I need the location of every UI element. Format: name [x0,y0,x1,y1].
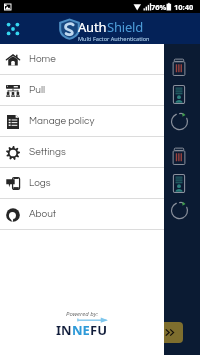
staticText: NE [72,321,90,335]
button[interactable]: Home [0,44,164,74]
button[interactable]: About [0,199,164,229]
button[interactable]: Details [172,85,186,104]
button[interactable]: Delete [172,58,186,77]
staticText: 76% [151,2,167,12]
button[interactable]: Pull [0,75,164,105]
staticText: FU [90,321,107,335]
staticText: Auth [78,18,107,36]
staticText: Logs [29,178,51,188]
staticText: Powered by: [66,310,98,318]
staticText: Pull [29,85,46,95]
button[interactable]: Refresh [171,112,188,130]
button[interactable]: Open navigation drawer [0,13,26,44]
button[interactable]: Logs [0,168,164,198]
staticText: IN [56,321,72,335]
button[interactable]: Delete [172,147,186,166]
staticText: Shield [107,18,144,36]
button[interactable]: Details [172,174,186,193]
staticText: Home [29,54,56,64]
button[interactable]: Settings [0,137,164,167]
button[interactable]: Manage policy [0,106,164,136]
staticText: About [29,209,57,219]
staticText: Manage policy [29,116,95,126]
button[interactable]: Next page [158,322,183,343]
button[interactable]: Refresh [171,201,188,219]
staticText: Settings [29,147,66,157]
staticText: Multi Factor Authentication [78,35,150,43]
staticText: 10:40 [174,2,194,12]
